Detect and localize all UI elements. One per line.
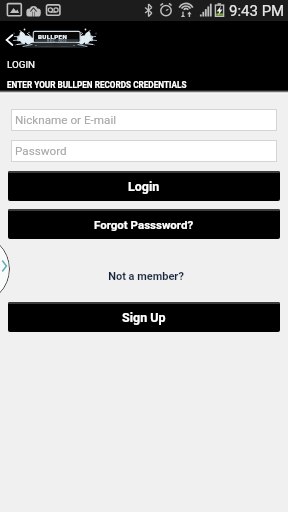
button[interactable]: Open navigation menu <box>0 234 10 304</box>
button[interactable]: Login <box>8 171 280 201</box>
button[interactable]: Password <box>11 140 277 162</box>
staticText: BULLPEN <box>38 33 68 40</box>
staticText: REC RDS <box>47 38 68 42</box>
staticText: Nickname or E-mail <box>15 113 117 127</box>
staticText: ENTER YOUR BULLPEN RECORDS CREDENTIALS <box>7 80 187 90</box>
staticText: 9:43 PM <box>229 2 285 20</box>
button[interactable]: Nickname or E-mail <box>11 109 277 131</box>
staticText: Not a member? <box>2 270 288 283</box>
button[interactable]: Back <box>1 29 17 51</box>
staticText: Forgot Passsword? <box>94 218 194 231</box>
staticText: LOGIN <box>7 59 36 70</box>
button[interactable]: Sign Up <box>8 302 280 332</box>
staticText: Login <box>128 179 160 194</box>
staticText: Sign Up <box>122 310 166 325</box>
staticText: Password <box>15 144 67 158</box>
button[interactable]: Forgot Passsword? <box>8 209 280 239</box>
